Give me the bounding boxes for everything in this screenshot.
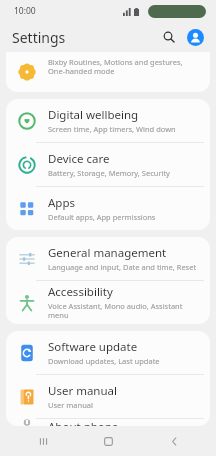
button[interactable]: Back (151, 426, 197, 456)
staticText: Accessibility (48, 284, 113, 300)
staticText: Download updates, Last update (48, 356, 160, 366)
button[interactable]: About phone (6, 419, 210, 426)
staticText: General management (48, 245, 167, 261)
button[interactable]: Software update (6, 331, 210, 375)
button[interactable]: Device care (6, 143, 210, 187)
button[interactable]: Account (184, 26, 206, 48)
staticText: Software update (48, 339, 138, 355)
button[interactable]: Search (158, 26, 180, 48)
staticText: About phone (48, 419, 119, 426)
button[interactable]: Apps (6, 187, 210, 230)
staticText: Voice Assistant, Mono audio, Assistant m… (48, 301, 198, 321)
button[interactable]: User manual (6, 375, 210, 419)
staticText: Bixby Routines, Motions and gestures, On… (48, 57, 183, 77)
staticText: Language and input, Date and time, Reset (48, 262, 197, 272)
staticText: Screen time, App timers, Wind down (48, 124, 176, 134)
button[interactable]: General management (6, 237, 210, 281)
staticText: Battery, Storage, Memory, Security (48, 168, 170, 178)
button[interactable]: Accessibility (6, 281, 210, 324)
staticText: Digital wellbeing (48, 107, 139, 123)
staticText: User manual (48, 400, 93, 410)
staticText: Settings (12, 28, 66, 47)
staticText: 10:00 (14, 5, 36, 17)
button[interactable]: Recents (20, 426, 66, 456)
staticText: Default apps, App permissions (48, 212, 156, 222)
staticText: User manual (48, 383, 117, 399)
staticText: Device care (48, 151, 110, 167)
button[interactable]: Digital wellbeing (6, 99, 210, 143)
staticText: Apps (48, 195, 76, 211)
button[interactable]: Home (85, 426, 131, 456)
button[interactable]: Advanced features (6, 52, 210, 92)
